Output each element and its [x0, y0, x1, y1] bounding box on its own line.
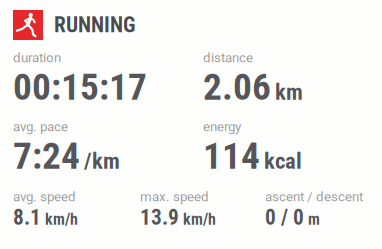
staticText: RUNNING: [54, 12, 135, 37]
staticText: 2.06: [203, 65, 271, 109]
staticText: 114: [203, 134, 260, 178]
staticText: 13.9: [140, 205, 179, 230]
staticText: 0 / 0: [265, 205, 304, 230]
staticText: km/h: [183, 210, 216, 229]
staticText: km: [275, 79, 303, 105]
staticText: kcal: [264, 148, 302, 174]
staticText: 00:15:17: [13, 65, 147, 109]
staticText: km/h: [45, 210, 78, 229]
staticText: ascent / descent: [265, 189, 363, 205]
staticText: 8.1: [13, 205, 41, 230]
staticText: energy: [203, 119, 241, 135]
staticText: /km: [84, 148, 120, 174]
staticText: duration: [13, 50, 61, 66]
staticText: 7:24: [13, 134, 80, 178]
staticText: avg. speed: [13, 189, 76, 205]
staticText: max. speed: [140, 189, 209, 205]
staticText: avg. pace: [13, 119, 68, 135]
staticText: distance: [203, 50, 253, 66]
staticText: m: [308, 210, 320, 229]
